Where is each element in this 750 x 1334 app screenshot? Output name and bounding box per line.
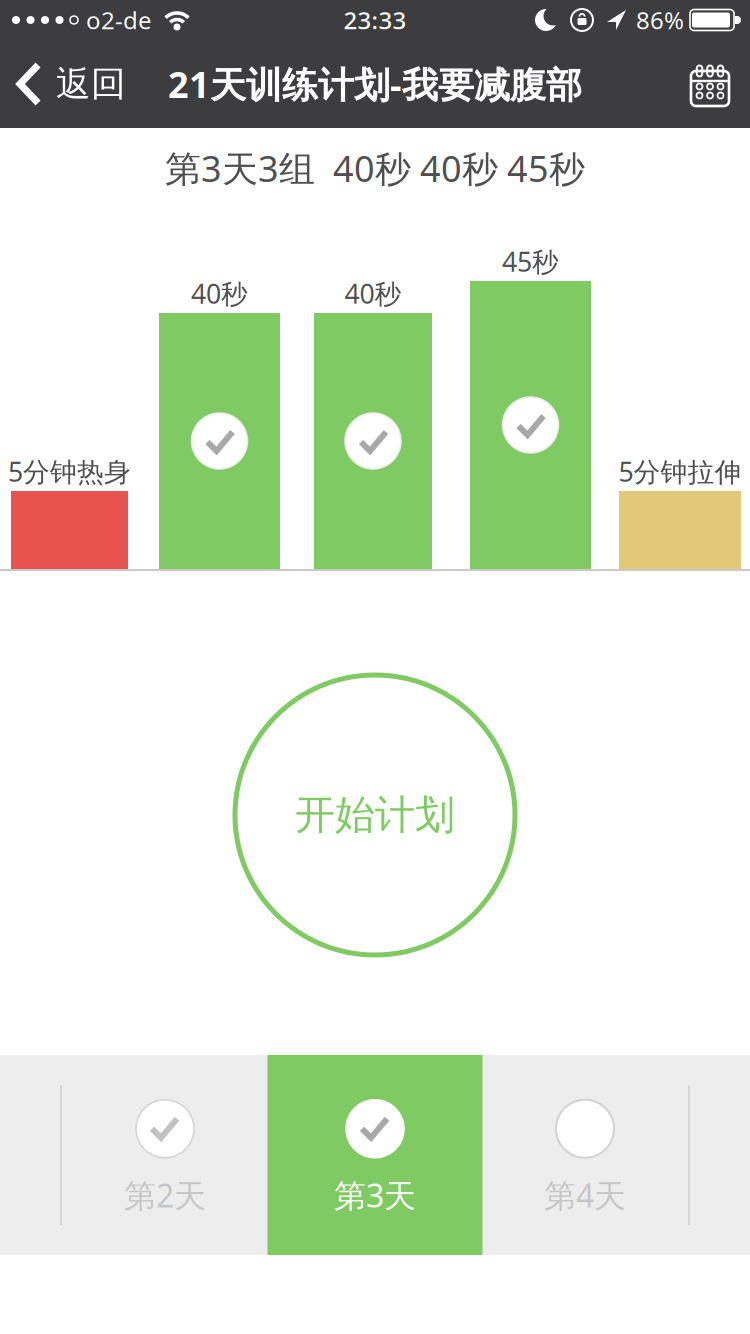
staticText: 开始计划 <box>295 790 455 839</box>
staticText: 45秒 <box>502 244 559 279</box>
staticText: 5分钟热身 <box>8 454 131 489</box>
button[interactable]: 开始计划 <box>235 675 515 955</box>
button[interactable]: 第4天 <box>480 1058 690 1258</box>
staticText: 21天训练计划-我要减腹部 <box>168 60 582 108</box>
staticText: 第2天 <box>124 1174 206 1216</box>
staticText: o2-de <box>86 4 152 36</box>
staticText: 第3天3组 40秒 40秒 45秒 <box>165 144 585 192</box>
staticText: 40秒 <box>344 276 401 311</box>
button[interactable]: 第2天 <box>60 1058 270 1258</box>
staticText: 40秒 <box>191 276 248 311</box>
button[interactable]: 日历 <box>690 40 750 128</box>
staticText: 5分钟拉伸 <box>618 454 741 489</box>
button[interactable]: 返回 <box>0 40 126 128</box>
staticText: 23:33 <box>343 4 406 36</box>
staticText: 返回 <box>56 63 126 105</box>
staticText: 第3天 <box>334 1174 416 1216</box>
staticText: 86% <box>636 4 684 36</box>
button[interactable]: 第3天 <box>270 1058 480 1258</box>
staticText: 第4天 <box>544 1174 626 1216</box>
